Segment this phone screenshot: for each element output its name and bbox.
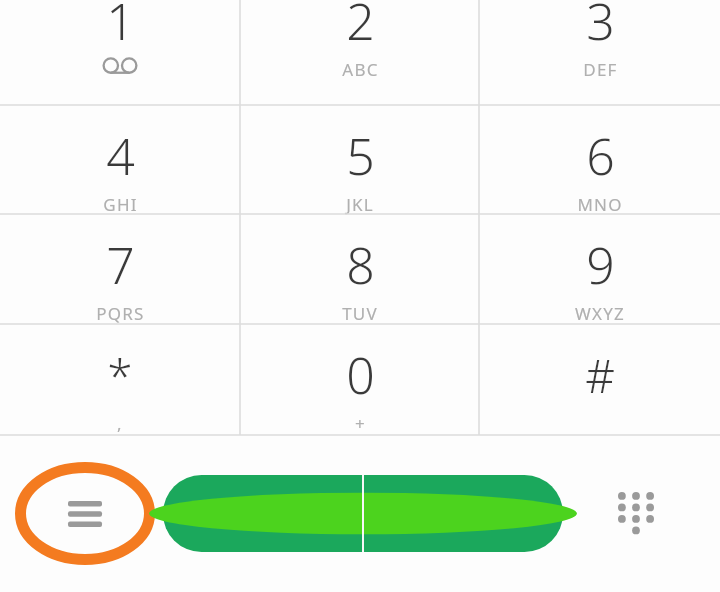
staticText: 2	[346, 0, 375, 55]
button[interactable]: Dialpad	[605, 483, 667, 545]
button[interactable]: 2	[240, 0, 480, 89]
staticText: #	[585, 344, 615, 407]
staticText: JKL	[346, 193, 374, 216]
staticText: 5	[346, 122, 375, 190]
button[interactable]: #	[480, 338, 720, 449]
staticText: GHI	[103, 193, 138, 216]
staticText: 6	[586, 122, 615, 190]
staticText: +	[355, 412, 366, 435]
button[interactable]: Call	[163, 475, 563, 552]
staticText: *	[107, 344, 133, 407]
staticText: 9	[586, 231, 615, 299]
button[interactable]: *	[0, 338, 240, 449]
staticText: PQRS	[96, 302, 145, 325]
button[interactable]: 7	[0, 228, 240, 338]
button[interactable]: 0	[240, 338, 480, 449]
button[interactable]: 3	[480, 0, 720, 89]
button[interactable]: 5	[240, 119, 480, 228]
button[interactable]: 8	[240, 228, 480, 338]
staticText: WXYZ	[575, 302, 625, 325]
staticText: 8	[346, 231, 375, 299]
button[interactable]: 9	[480, 228, 720, 338]
staticText: MNO	[577, 193, 623, 216]
staticText: ,	[117, 412, 123, 435]
staticText: 4	[106, 122, 135, 190]
button[interactable]: 1	[0, 0, 240, 89]
button[interactable]: 4	[0, 119, 240, 228]
staticText: 3	[586, 0, 615, 55]
staticText: 0	[346, 341, 375, 409]
staticText: 1	[106, 0, 135, 55]
staticText: DEF	[583, 58, 618, 81]
button[interactable]: Menu	[15, 462, 155, 565]
staticText: ABC	[342, 58, 379, 81]
staticText: TUV	[342, 302, 378, 325]
button[interactable]: 6	[480, 119, 720, 228]
staticText: 7	[106, 231, 135, 299]
